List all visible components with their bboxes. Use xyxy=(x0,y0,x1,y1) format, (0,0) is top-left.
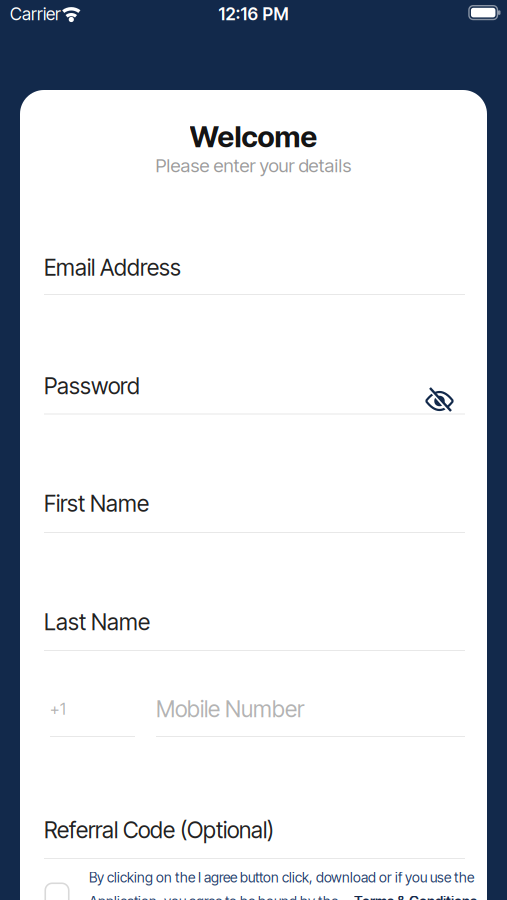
staticText: 12:16 PM xyxy=(218,3,288,24)
staticText: Password xyxy=(44,372,140,400)
staticText: Mobile Number xyxy=(156,695,304,723)
button[interactable]: +1 xyxy=(44,683,465,743)
staticText: Last Name xyxy=(44,608,150,636)
button[interactable]: Last Name xyxy=(44,617,465,683)
button[interactable]: Email Address xyxy=(44,261,465,327)
staticText: Carrier xyxy=(10,3,61,24)
staticText: Application, you agree to be bound by th… xyxy=(89,893,338,900)
staticText: First Name xyxy=(44,490,149,517)
staticText: Referral Code (Optional) xyxy=(44,816,274,844)
staticText: Please enter your details xyxy=(155,154,351,177)
button[interactable] xyxy=(45,883,69,900)
button[interactable]: Password xyxy=(44,380,465,446)
staticText: By clicking on the I agree button click,… xyxy=(89,869,474,886)
staticText: Welcome xyxy=(189,119,317,154)
button[interactable] xyxy=(421,382,457,418)
staticText: +1 xyxy=(50,699,66,719)
button[interactable]: First Name xyxy=(44,499,465,565)
button[interactable]: By clicking on the I agree button click,… xyxy=(89,868,507,900)
button[interactable]: Referral Code (Optional) xyxy=(44,825,465,891)
staticText: Terms & Conditions xyxy=(354,893,477,900)
staticText: Email Address xyxy=(44,254,181,281)
